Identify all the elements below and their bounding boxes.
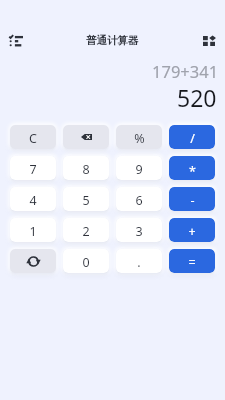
button[interactable]: C: [10, 125, 56, 149]
staticText: 7: [29, 161, 37, 178]
staticText: -: [190, 192, 195, 209]
staticText: 3: [135, 223, 143, 240]
button[interactable]: Switch mode: [10, 249, 56, 273]
staticText: 6: [135, 192, 143, 209]
staticText: 普通计算器: [86, 34, 139, 47]
button[interactable]: 7: [10, 156, 56, 180]
button[interactable]: 8: [63, 156, 109, 180]
staticText: *: [189, 163, 196, 180]
staticText: C: [29, 130, 37, 147]
staticText: 8: [82, 161, 90, 178]
staticText: 2: [82, 223, 90, 240]
button[interactable]: 9: [116, 156, 162, 180]
staticText: 9: [135, 161, 143, 178]
button[interactable]: Backspace: [63, 125, 109, 149]
button[interactable]: 3: [116, 218, 162, 242]
button[interactable]: .: [116, 249, 162, 273]
button[interactable]: +: [169, 218, 215, 242]
staticText: 520: [177, 82, 217, 113]
staticText: .: [137, 254, 141, 271]
button[interactable]: =: [169, 249, 215, 273]
staticText: 179+341: [152, 60, 219, 82]
staticText: %: [134, 130, 145, 147]
button[interactable]: 2: [63, 218, 109, 242]
staticText: 4: [29, 192, 37, 209]
button[interactable]: 4: [10, 187, 56, 211]
staticText: /: [190, 130, 195, 147]
button[interactable]: %: [116, 125, 162, 149]
button[interactable]: 1: [10, 218, 56, 242]
button[interactable]: History: [0, 24, 32, 58]
staticText: +: [188, 223, 196, 240]
button[interactable]: 0: [63, 249, 109, 273]
staticText: 0: [82, 254, 90, 271]
button[interactable]: /: [169, 125, 215, 149]
button[interactable]: Apps: [193, 24, 225, 58]
button[interactable]: 5: [63, 187, 109, 211]
staticText: 5: [82, 192, 90, 209]
staticText: =: [188, 254, 196, 271]
button[interactable]: 6: [116, 187, 162, 211]
staticText: 1: [29, 223, 37, 240]
button[interactable]: *: [169, 156, 215, 180]
button[interactable]: -: [169, 187, 215, 211]
